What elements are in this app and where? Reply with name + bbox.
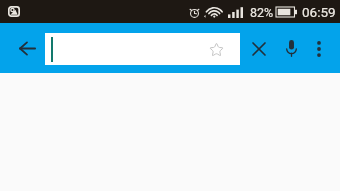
button[interactable]: Voice search: [279, 36, 303, 60]
button[interactable]: Screenshot notification: [6, 4, 21, 19]
button[interactable]: Search or type web address: [45, 33, 240, 65]
button[interactable]: Close: [247, 37, 271, 61]
staticText: 82%: [250, 5, 274, 20]
button[interactable]: More options: [307, 37, 330, 60]
button[interactable]: Bookmark: [206, 39, 226, 59]
button[interactable]: Back: [11, 32, 43, 64]
staticText: 06:59: [302, 4, 336, 20]
